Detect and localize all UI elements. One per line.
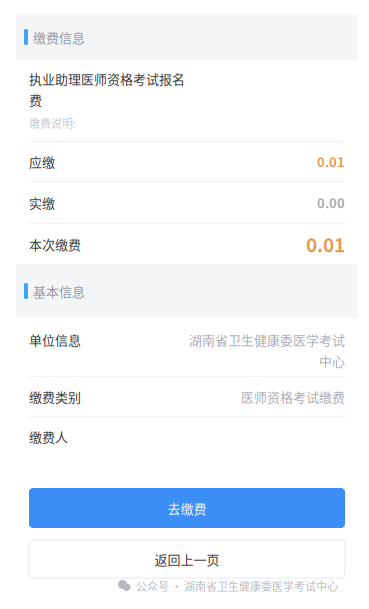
staticText: 0.01 <box>306 230 345 258</box>
button[interactable]: 返回上一页 <box>29 540 345 578</box>
staticText: 实缴 <box>29 193 55 212</box>
staticText: 缴费说明: <box>29 115 76 131</box>
staticText: 公众号 · 湖南省卫生健康委医学考试中心 <box>136 578 338 594</box>
staticText: 缴费信息 <box>33 28 85 46</box>
staticText: 湖南省卫生健康委医学考试 <box>189 330 345 349</box>
staticText: 返回上一页 <box>154 550 219 568</box>
staticText: 中心 <box>319 351 345 370</box>
staticText: 医师资格考试缴费 <box>241 387 345 406</box>
staticText: 应缴 <box>29 152 55 171</box>
staticText: 0.00 <box>317 193 345 212</box>
staticText: 0.01 <box>317 152 345 171</box>
staticText: 去缴费 <box>167 499 206 517</box>
staticText: 单位信息 <box>29 330 81 349</box>
staticText: 执业助理医师资格考试报名 <box>29 69 185 88</box>
staticText: 缴费类别 <box>29 387 81 406</box>
staticText: 本次缴费 <box>29 235 81 253</box>
button[interactable]: 去缴费 <box>29 488 345 528</box>
staticText: 基本信息 <box>33 282 85 300</box>
staticText: 缴费人 <box>29 427 68 446</box>
staticText: 费 <box>29 90 42 109</box>
